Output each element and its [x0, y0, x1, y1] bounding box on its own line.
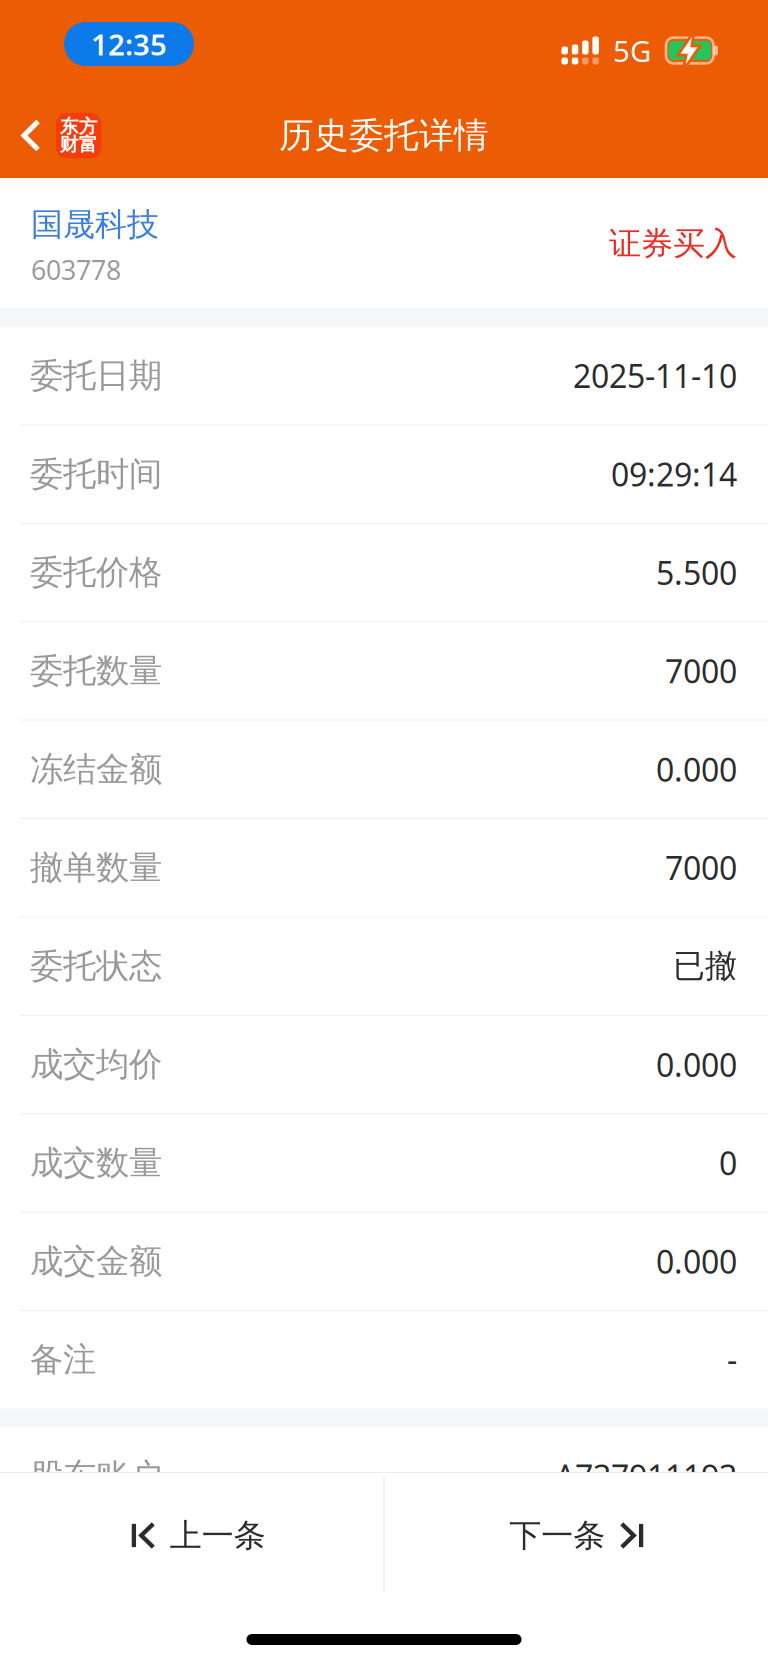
- staticText: 09:29:14: [611, 453, 737, 495]
- staticText: 7000: [665, 650, 737, 692]
- staticText: 撤单数量: [30, 847, 162, 888]
- staticText: 财富: [60, 133, 98, 156]
- staticText: 委托时间: [30, 454, 162, 494]
- staticText: 成交数量: [30, 1142, 162, 1183]
- staticText: 上一条: [170, 1516, 266, 1555]
- staticText: 历史委托详情: [279, 114, 489, 157]
- staticText: A737911193: [555, 1455, 737, 1497]
- staticText: 东方: [60, 115, 98, 138]
- staticText: 0.000: [656, 1240, 737, 1283]
- staticText: 委托价格: [30, 552, 162, 593]
- staticText: 备注: [30, 1339, 96, 1380]
- staticText: 委托状态: [30, 946, 162, 986]
- staticText: 成交均价: [30, 1044, 162, 1085]
- staticText: 下一条: [509, 1516, 605, 1555]
- staticText: -: [727, 1338, 737, 1381]
- staticText: 5.500: [656, 551, 737, 594]
- button[interactable]: 上一条: [0, 1473, 383, 1592]
- button[interactable]: 返回 东方财富: [0, 88, 115, 178]
- staticText: 国晟科技: [31, 205, 159, 244]
- staticText: 7000: [665, 846, 737, 889]
- staticText: 2025-11-10: [573, 354, 737, 397]
- staticText: 成交金额: [30, 1241, 162, 1282]
- staticText: 证券买入: [609, 224, 737, 263]
- staticText: 委托数量: [30, 650, 162, 691]
- staticText: 12:35: [91, 24, 167, 63]
- button[interactable]: 下一条: [384, 1473, 768, 1592]
- staticText: 0.000: [656, 748, 737, 791]
- staticText: 冻结金额: [30, 749, 162, 790]
- staticText: 603778: [31, 252, 121, 287]
- staticText: 0.000: [656, 1043, 737, 1086]
- staticText: 0: [719, 1142, 737, 1184]
- staticText: 股东账户: [30, 1456, 162, 1496]
- staticText: 已撤: [673, 946, 737, 986]
- staticText: 5G: [613, 31, 651, 70]
- staticText: 委托日期: [30, 355, 162, 396]
